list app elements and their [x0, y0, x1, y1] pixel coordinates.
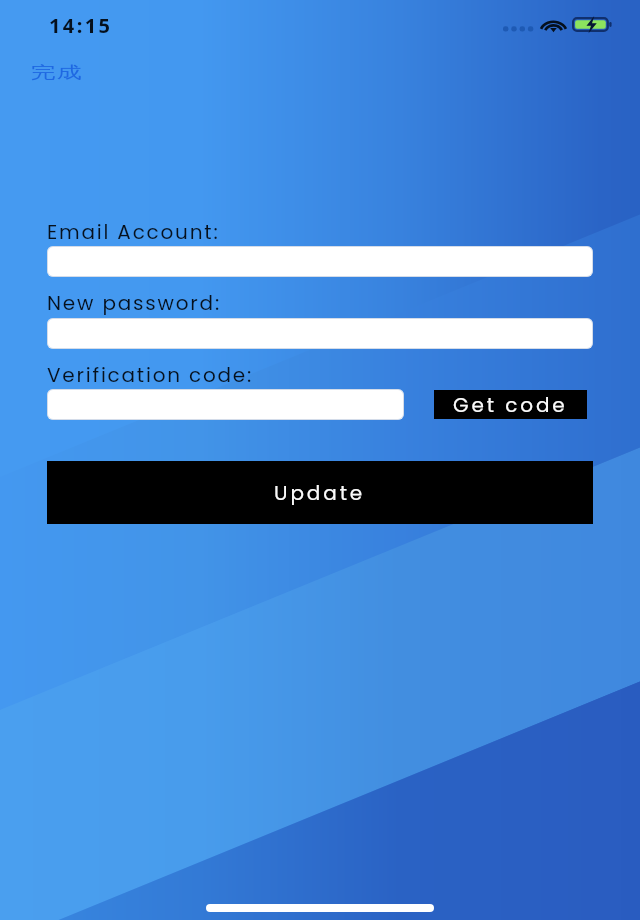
button[interactable]: 完成	[22, 53, 84, 93]
staticText: Verification code:	[47, 361, 254, 389]
staticText: New password:	[47, 289, 221, 317]
staticText: Email Account:	[47, 218, 220, 246]
staticText: 14:15	[49, 12, 113, 39]
button[interactable]: Text input	[47, 389, 404, 420]
staticText: Update	[274, 479, 366, 507]
button[interactable]: Text input	[47, 318, 593, 349]
button[interactable]: Text input	[47, 246, 593, 277]
button[interactable]: Update	[47, 461, 593, 524]
button[interactable]: Get code	[434, 390, 587, 419]
staticText: Get code	[453, 391, 568, 419]
staticText: 完成	[30, 62, 82, 84]
